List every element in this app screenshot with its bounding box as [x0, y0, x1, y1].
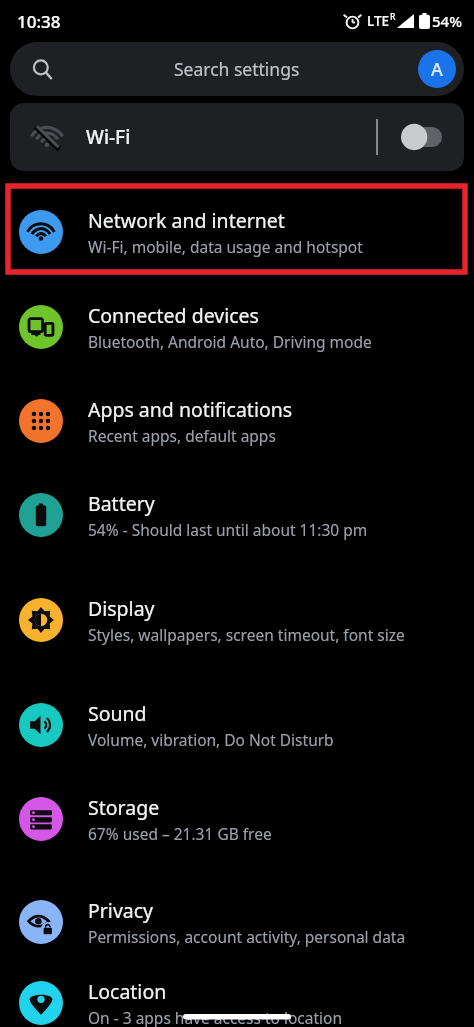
staticText: On - 3 apps have access to location: [88, 1007, 343, 1027]
staticText: Search settings: [174, 57, 300, 81]
staticText: Wi-Fi: [86, 124, 131, 150]
staticText: Recent apps, default apps: [88, 425, 276, 446]
button[interactable]: Privacy: [0, 866, 474, 978]
button[interactable]: Account: [418, 50, 456, 88]
staticText: Permissions, account activity, personal …: [88, 926, 406, 947]
button[interactable]: Apps and notifications: [0, 374, 474, 468]
staticText: Apps and notifications: [88, 396, 293, 423]
staticText: Wi-Fi, mobile, data usage and hotspot: [88, 236, 363, 257]
button[interactable]: Wi-Fi: [10, 103, 464, 171]
staticText: Location: [88, 978, 167, 1005]
staticText: Battery: [88, 490, 155, 517]
staticText: R: [390, 11, 396, 23]
button[interactable]: Search settings: [10, 42, 464, 96]
staticText: Storage: [88, 794, 160, 821]
staticText: LTE: [367, 12, 390, 30]
staticText: 54% - Should last until about 11:30 pm: [88, 519, 368, 540]
button[interactable]: Display: [0, 562, 474, 678]
button[interactable]: Connected devices: [0, 279, 474, 374]
button[interactable]: Network and internet: [0, 185, 474, 279]
staticText: Bluetooth, Android Auto, Driving mode: [88, 331, 372, 352]
staticText: Display: [88, 595, 155, 622]
staticText: A: [431, 57, 443, 82]
staticText: 67% used – 21.31 GB free: [88, 823, 272, 844]
staticText: Network and internet: [88, 207, 285, 234]
button[interactable]: Location: [0, 978, 474, 1027]
staticText: Volume, vibration, Do Not Disturb: [88, 729, 334, 750]
staticText: Sound: [88, 700, 147, 727]
staticText: Connected devices: [88, 302, 259, 329]
staticText: 10:38: [17, 10, 61, 33]
staticText: 54%: [432, 11, 462, 31]
button[interactable]: Wi-Fi toggle: [400, 123, 442, 151]
button[interactable]: Battery: [0, 468, 474, 562]
button[interactable]: Sound: [0, 678, 474, 772]
staticText: Privacy: [88, 897, 154, 924]
button[interactable]: Storage: [0, 772, 474, 866]
staticText: Styles, wallpapers, screen timeout, font…: [88, 624, 405, 645]
